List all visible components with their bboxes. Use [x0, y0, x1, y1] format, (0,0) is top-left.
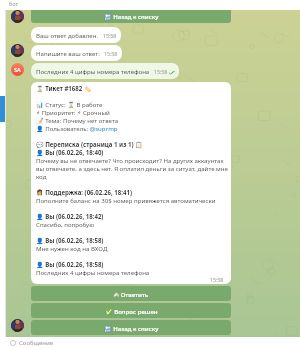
staticText: Мне нужен код на ВХОД — [36, 244, 108, 252]
staticText: 15:58 — [104, 50, 118, 57]
staticText: ✍️ Ответить — [114, 290, 149, 298]
staticText: 👤 Вы (06.02.26, 18:42) — [36, 212, 104, 220]
staticText: бот — [9, 0, 19, 8]
staticText: 💬 Переписка (страница 1 из 1) 📋 — [36, 140, 143, 148]
staticText: ⌛ Тикет #1682 🏷 — [36, 84, 92, 92]
staticText: Ваш ответ добавлен. — [36, 31, 99, 39]
button[interactable]: 🔙 Назад к списку — [31, 8, 231, 23]
staticText: SA — [14, 66, 21, 74]
staticText: 🔙 Назад к списку — [104, 12, 159, 20]
staticText: Напишите ваш ответ: — [36, 49, 100, 57]
staticText: Сообщение — [19, 339, 53, 347]
staticText: 👤 Вы (06.02.26, 18:58) — [36, 236, 104, 244]
staticText: ⚡ Приоритет: ⚡ Срочный — [36, 108, 110, 116]
staticText: 👤 Вы (06.02.26, 18:40) — [36, 148, 104, 156]
staticText: 📊 Статус: ⌛ В работе — [36, 100, 103, 108]
staticText: Последних 4 цифры номера телефона — [36, 268, 150, 276]
staticText: 15:58 — [103, 32, 117, 39]
staticText: 👤 Вы (06.02.26, 18:58) — [36, 260, 104, 268]
staticText: Спасибо, попробую — [36, 220, 95, 228]
staticText: 15:58 — [210, 276, 224, 283]
button[interactable]: 🔙 Назад к списку — [31, 320, 231, 335]
staticText: ✅ Вопрос решен — [105, 307, 158, 315]
staticText: 📝 Тема: Почему нет ответа — [36, 116, 119, 124]
button[interactable]: ✍️ Ответить — [31, 286, 231, 301]
staticText: Последних 4 цифры номера телефона — [36, 67, 150, 75]
staticText: Пополните баланс на 30$ номер привяжется… — [36, 196, 216, 204]
staticText: Почему вы не отвечаете? Что происходит? … — [36, 156, 229, 180]
staticText: 15:58 — [154, 68, 168, 75]
button[interactable]: ✅ Вопрос решен — [31, 303, 231, 318]
staticText: 👩‍💼 Поддержка: (06.02.26, 18:41) — [36, 188, 133, 196]
staticText: 👤 Пользователь: @suprmp — [36, 124, 118, 132]
staticText: 🔙 Назад к списку — [104, 324, 159, 332]
